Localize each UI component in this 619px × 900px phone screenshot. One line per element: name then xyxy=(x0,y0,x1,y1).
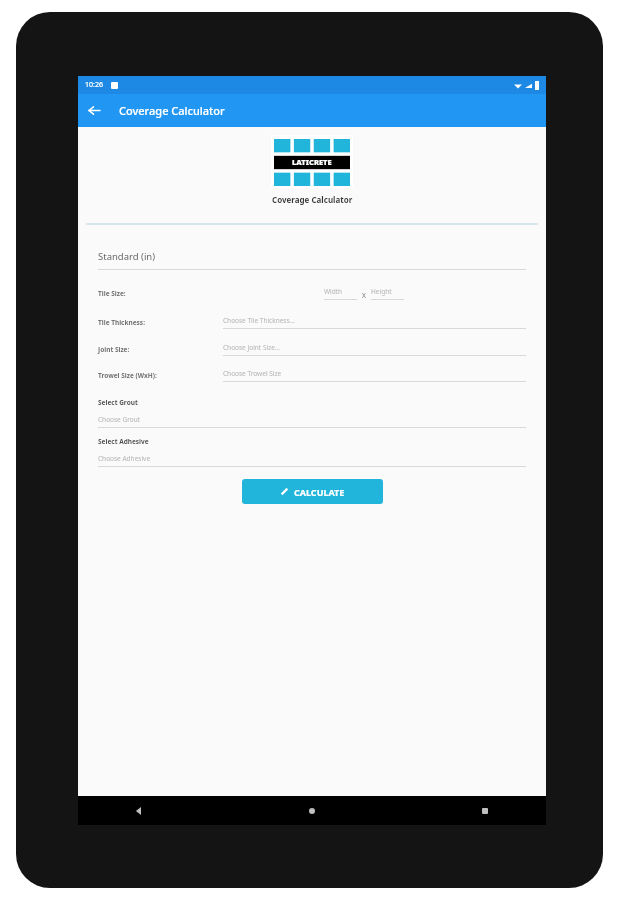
staticText: X xyxy=(362,291,366,300)
button[interactable]: Trowel Size (WxH): xyxy=(98,369,526,382)
staticText: Choose Joint Size... xyxy=(223,343,281,352)
staticText: Standard (in) xyxy=(98,250,156,263)
button[interactable]: CALCULATE xyxy=(242,479,383,504)
staticText: Tile Size: xyxy=(98,289,324,298)
staticText: Coverage Calculator xyxy=(272,194,353,205)
staticText: Choose Tile Thickness... xyxy=(223,316,295,325)
button[interactable]: Tile Thickness: xyxy=(98,316,526,329)
staticText: Trowel Size (WxH): xyxy=(98,371,223,380)
button[interactable]: Height xyxy=(371,287,404,300)
staticText: CALCULATE xyxy=(294,486,345,498)
staticText: Coverage Calculator xyxy=(119,103,225,118)
button[interactable]: Back xyxy=(126,798,152,824)
staticText: Choose Adhesive xyxy=(98,454,151,463)
button[interactable]: Recent apps xyxy=(472,798,498,824)
staticText: Choose Trowel Size xyxy=(223,369,282,378)
staticText: 10:26 xyxy=(85,80,103,90)
staticText: LATICRETE xyxy=(292,157,332,167)
staticText: Tile Thickness: xyxy=(98,318,223,327)
button[interactable]: Select Adhesive xyxy=(98,437,526,467)
button[interactable]: Joint Size: xyxy=(98,343,526,356)
staticText: Choose Grout xyxy=(98,415,141,424)
button[interactable]: Standard (in) xyxy=(98,250,526,270)
button[interactable]: Select Grout xyxy=(98,398,526,428)
staticText: Select Grout xyxy=(98,398,138,407)
button[interactable]: Home xyxy=(299,798,325,824)
button[interactable]: Back xyxy=(78,94,111,127)
staticText: Width xyxy=(324,287,343,296)
staticText: Select Adhesive xyxy=(98,437,149,446)
staticText: Joint Size: xyxy=(98,345,223,354)
button[interactable]: Width xyxy=(324,287,357,300)
staticText: Height xyxy=(371,287,392,296)
